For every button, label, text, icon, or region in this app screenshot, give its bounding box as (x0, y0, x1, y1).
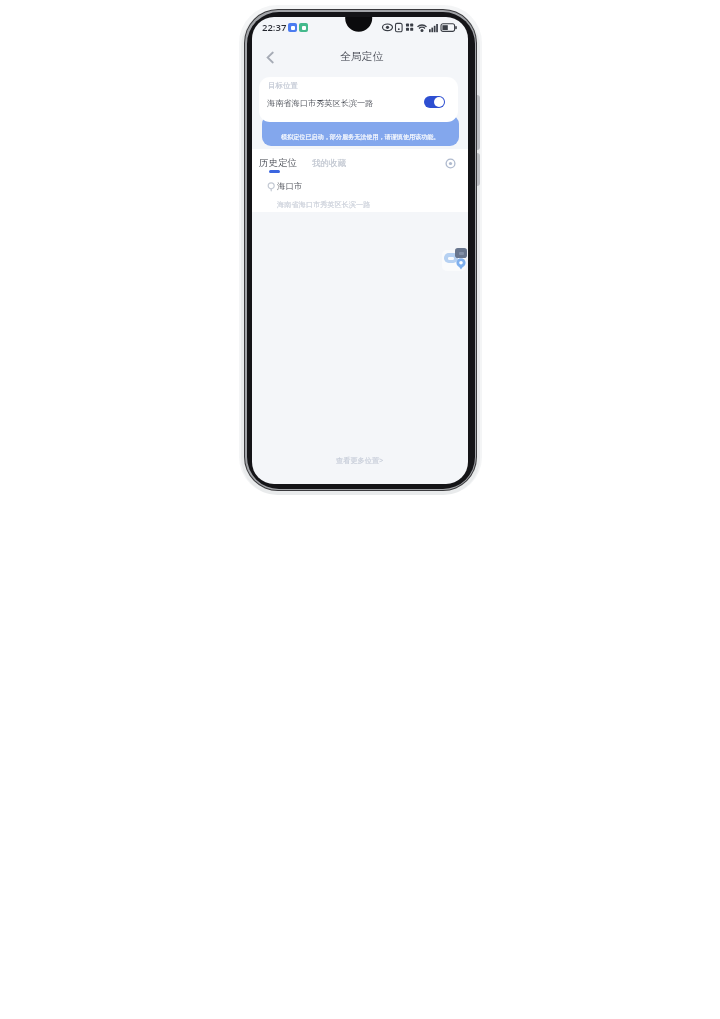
button[interactable] (424, 96, 445, 108)
button[interactable] (443, 156, 458, 171)
staticText: 目标位置 (268, 81, 298, 90)
staticText: 我的收藏 (312, 158, 346, 169)
staticText: 模拟定位已启动，部分服务无法使用，请谨慎使用该功能。 (281, 133, 440, 141)
button[interactable]: 查看更多位置> (310, 453, 410, 467)
staticText: 全局定位 (340, 50, 384, 64)
staticText: 海南省海口市秀英区长滨一路 (267, 98, 374, 108)
staticText: 海南省海口市秀英区长滨一路 (277, 200, 371, 209)
staticText: 查看更多位置> (336, 455, 384, 465)
button[interactable] (252, 177, 468, 212)
button[interactable] (455, 248, 467, 258)
button[interactable]: 历史定位 (259, 154, 301, 172)
button[interactable] (260, 47, 280, 67)
staticText: 历史定位 (259, 157, 297, 169)
button[interactable] (444, 253, 458, 263)
staticText: 海口市 (277, 181, 303, 192)
button[interactable]: 我的收藏 (312, 154, 352, 172)
staticText: 22:37 (262, 21, 287, 34)
button[interactable] (259, 77, 458, 122)
